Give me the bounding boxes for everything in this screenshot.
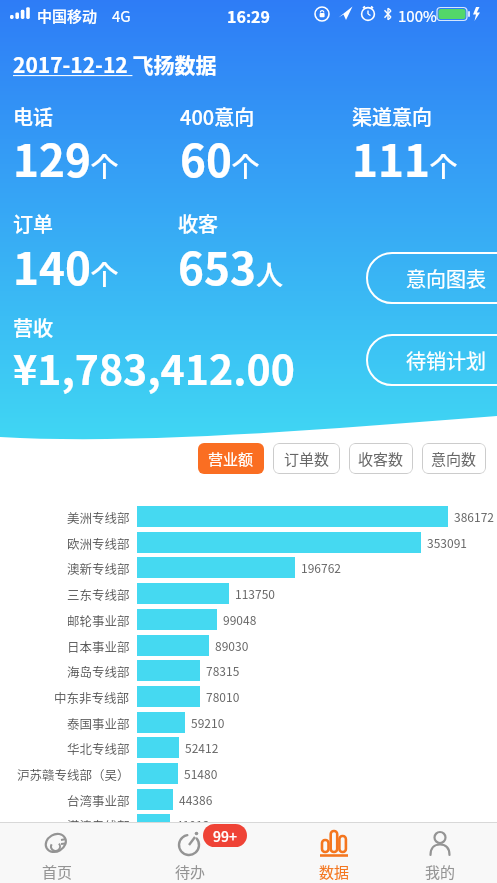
- staticText: 353091: [427, 534, 467, 551]
- staticText: 台湾事业部: [67, 791, 130, 809]
- staticText: 4G: [112, 5, 131, 27]
- staticText: 日本事业部: [67, 637, 130, 655]
- staticText: 89030: [215, 637, 249, 654]
- staticText: 订单数: [284, 448, 330, 470]
- staticText: 2017-12-12 飞扬数据: [13, 49, 217, 79]
- staticText: 泰国事业部: [67, 714, 130, 732]
- staticText: 中东非专线部: [54, 688, 130, 706]
- staticText: 海岛专线部: [67, 662, 130, 680]
- button[interactable]: 收客数: [349, 443, 413, 474]
- staticText: 78010: [206, 688, 240, 705]
- staticText: 待办: [175, 861, 206, 883]
- staticText: 营业额: [208, 448, 254, 470]
- staticText: 100%: [398, 5, 437, 27]
- staticText: 收客: [178, 209, 218, 238]
- staticText: 653人: [178, 234, 283, 298]
- staticText: 港澳专线部: [67, 816, 130, 834]
- button[interactable]: 意向图表: [366, 252, 497, 304]
- staticText: 三东专线部: [67, 585, 130, 603]
- button[interactable]: 待办: [150, 822, 230, 883]
- staticText: 澳新专线部: [67, 559, 130, 577]
- staticText: 欧洲专线部: [67, 534, 130, 552]
- staticText: 16:29: [227, 4, 270, 27]
- staticText: 59210: [191, 714, 225, 731]
- button[interactable]: 待销计划: [366, 334, 497, 386]
- staticText: 华北专线部: [67, 739, 130, 757]
- button[interactable]: 首页: [17, 822, 97, 883]
- staticText: 111个: [352, 126, 457, 190]
- staticText: 收客数: [358, 448, 404, 470]
- staticText: 99+: [213, 826, 237, 846]
- staticText: 订单: [13, 209, 53, 238]
- staticText: 99048: [223, 611, 257, 628]
- button[interactable]: 营业额: [198, 443, 264, 474]
- staticText: 386172: [454, 508, 494, 525]
- staticText: 营收: [13, 313, 53, 342]
- staticText: 140个: [13, 234, 118, 298]
- staticText: 113750: [235, 585, 275, 602]
- staticText: 52412: [185, 739, 219, 756]
- staticText: 意向图表: [406, 264, 486, 293]
- staticText: 待销计划: [406, 346, 486, 375]
- staticText: 美洲专线部: [67, 508, 130, 526]
- button[interactable]: 订单数: [273, 443, 340, 474]
- staticText: 我的: [425, 861, 456, 883]
- staticText: ¥1,783,412.00: [13, 337, 295, 396]
- staticText: 中国移动: [37, 5, 98, 27]
- staticText: 78315: [206, 662, 240, 679]
- staticText: 邮轮事业部: [67, 611, 130, 629]
- button[interactable]: 意向数: [422, 443, 486, 474]
- staticText: 44386: [179, 791, 213, 808]
- staticText: 129个: [13, 126, 118, 190]
- staticText: 196762: [301, 559, 341, 576]
- staticText: 意向数: [431, 448, 477, 470]
- staticText: 渠道意向: [352, 102, 432, 131]
- button[interactable]: 数据: [294, 822, 374, 883]
- staticText: 首页: [42, 861, 73, 883]
- staticText: 沪苏赣专线部（吴）: [17, 765, 130, 783]
- staticText: 400意向: [180, 102, 255, 131]
- staticText: 电话: [13, 102, 53, 131]
- staticText: 数据: [319, 861, 350, 883]
- button[interactable]: 我的: [400, 822, 480, 883]
- staticText: 60个: [180, 126, 259, 190]
- staticText: 41013: [176, 816, 210, 833]
- staticText: 51480: [184, 765, 218, 782]
